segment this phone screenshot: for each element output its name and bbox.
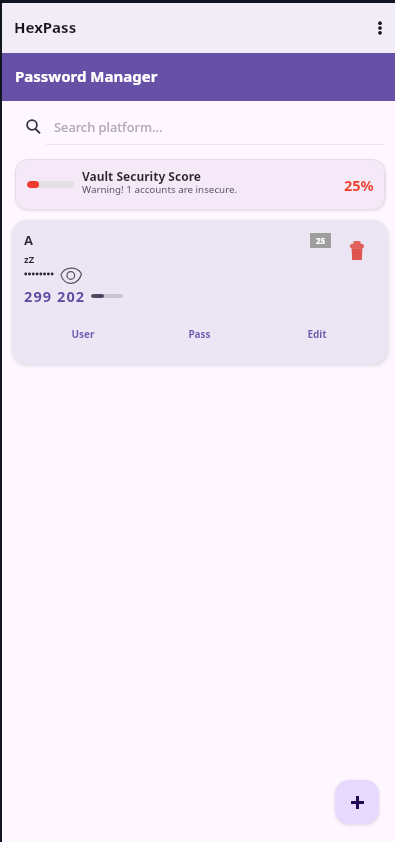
staticText: Pass bbox=[188, 327, 211, 341]
staticText: Warning! 1 accounts are insecure. bbox=[82, 183, 238, 196]
staticText: zZ bbox=[24, 253, 35, 266]
button[interactable]: 25 bbox=[310, 233, 331, 248]
button[interactable]: Show password bbox=[58, 264, 84, 284]
staticText: Password Manager bbox=[15, 66, 158, 86]
button[interactable]: Edit bbox=[258, 322, 375, 346]
button[interactable]: User bbox=[24, 322, 141, 346]
staticText: A bbox=[24, 231, 33, 249]
staticText: Edit bbox=[307, 327, 327, 341]
button[interactable]: Search platform... bbox=[24, 101, 385, 145]
staticText: HexPass bbox=[14, 17, 77, 37]
staticText: 25 bbox=[316, 235, 326, 246]
button[interactable]: More options bbox=[365, 13, 395, 43]
staticText: User bbox=[71, 327, 95, 341]
staticText: 25% bbox=[344, 175, 374, 195]
staticText: 299 202 bbox=[24, 286, 86, 306]
button[interactable]: Add password bbox=[335, 780, 379, 824]
staticText: Vault Security Score bbox=[82, 168, 201, 184]
button[interactable]: Pass bbox=[141, 322, 258, 346]
button[interactable]: Delete bbox=[347, 241, 367, 260]
button[interactable]: Vault Security Score bbox=[15, 159, 385, 210]
staticText: Search platform... bbox=[54, 118, 163, 135]
